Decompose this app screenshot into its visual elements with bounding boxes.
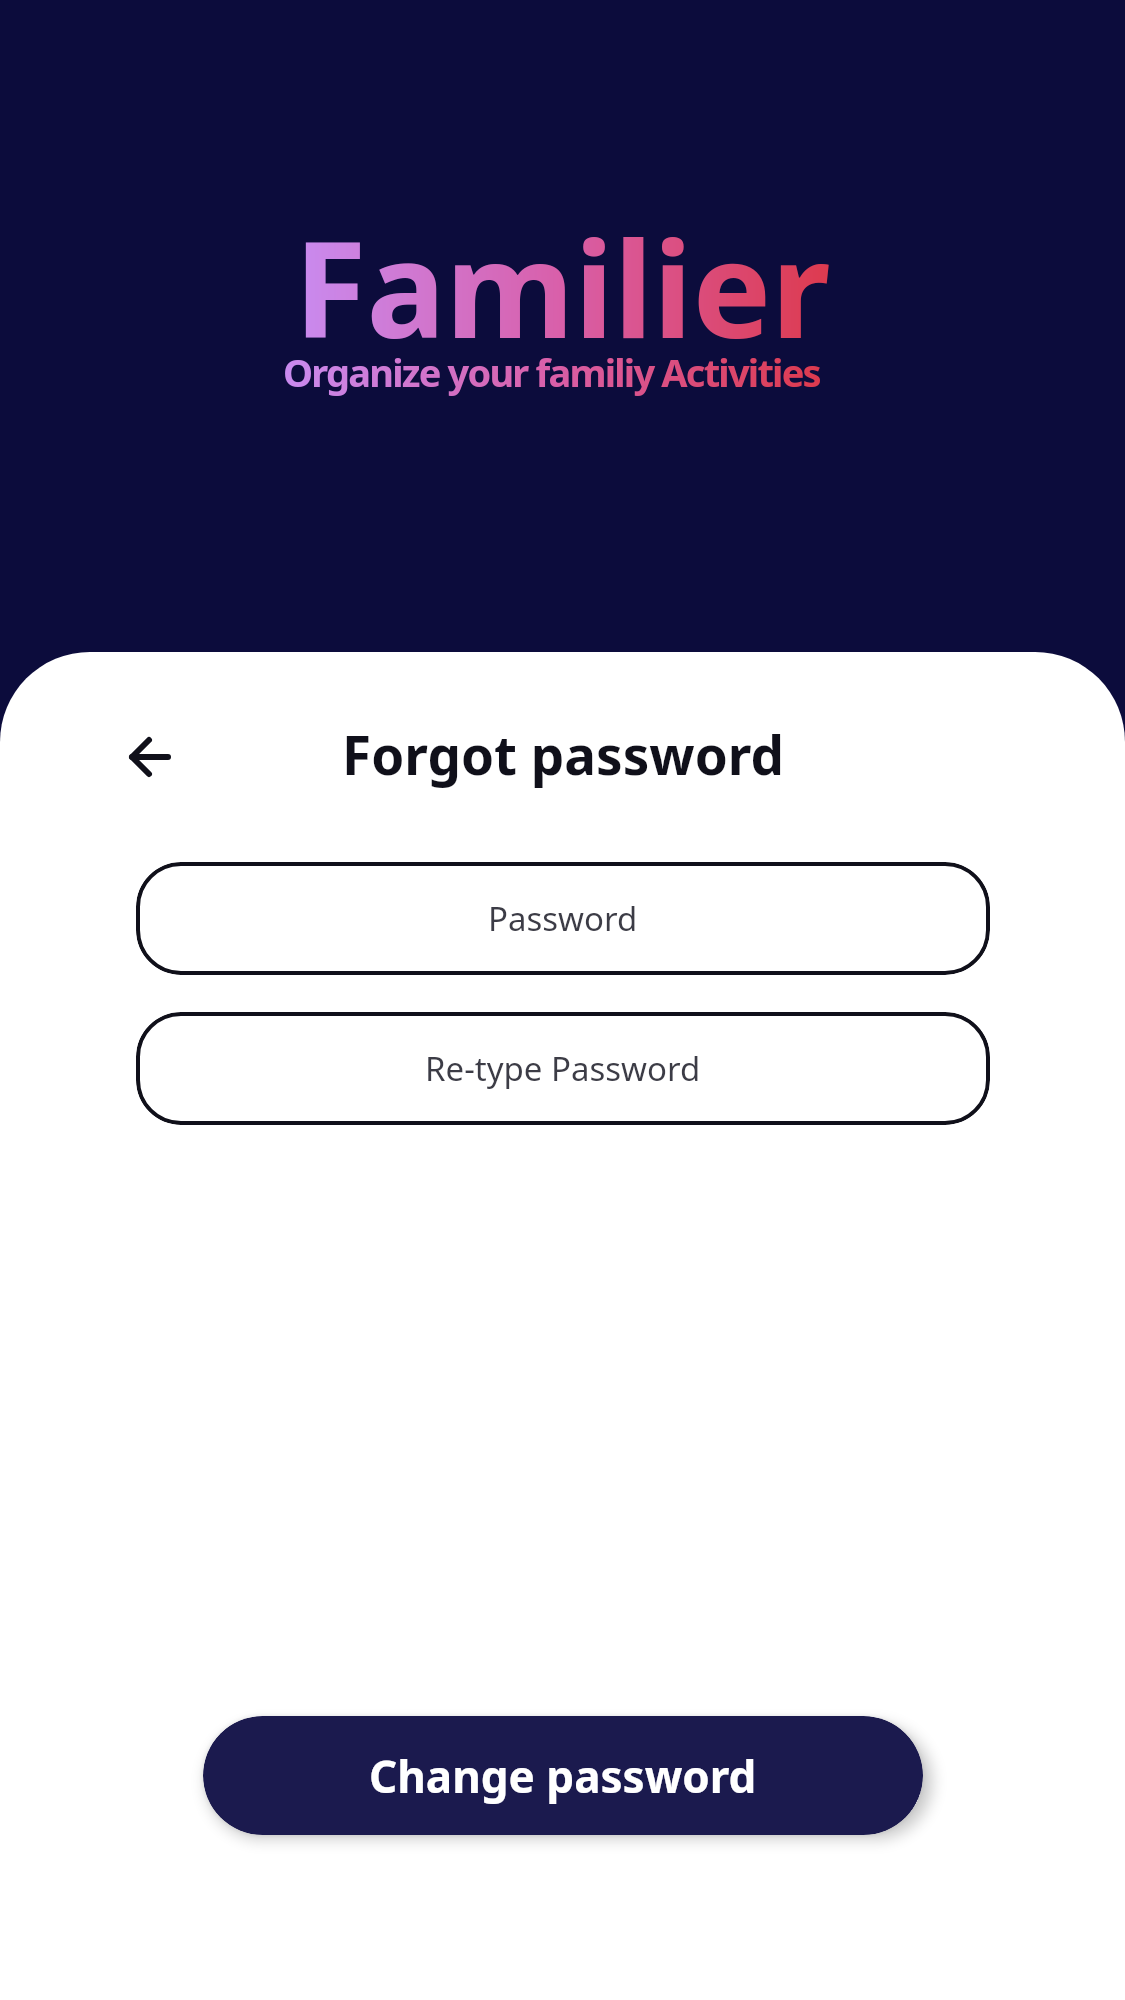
staticText: Forgot password — [342, 718, 784, 790]
staticText: Organize your familiy Activities — [283, 346, 820, 398]
staticText: Familier — [294, 197, 831, 377]
button[interactable]: Re-type Password — [136, 1012, 990, 1125]
button[interactable] — [120, 727, 180, 787]
button[interactable]: Password — [136, 862, 990, 975]
staticText: Password — [488, 896, 638, 941]
staticText: Re-type Password — [425, 1046, 701, 1091]
button[interactable]: Change password — [203, 1716, 923, 1835]
staticText: Change password — [369, 1746, 757, 1806]
